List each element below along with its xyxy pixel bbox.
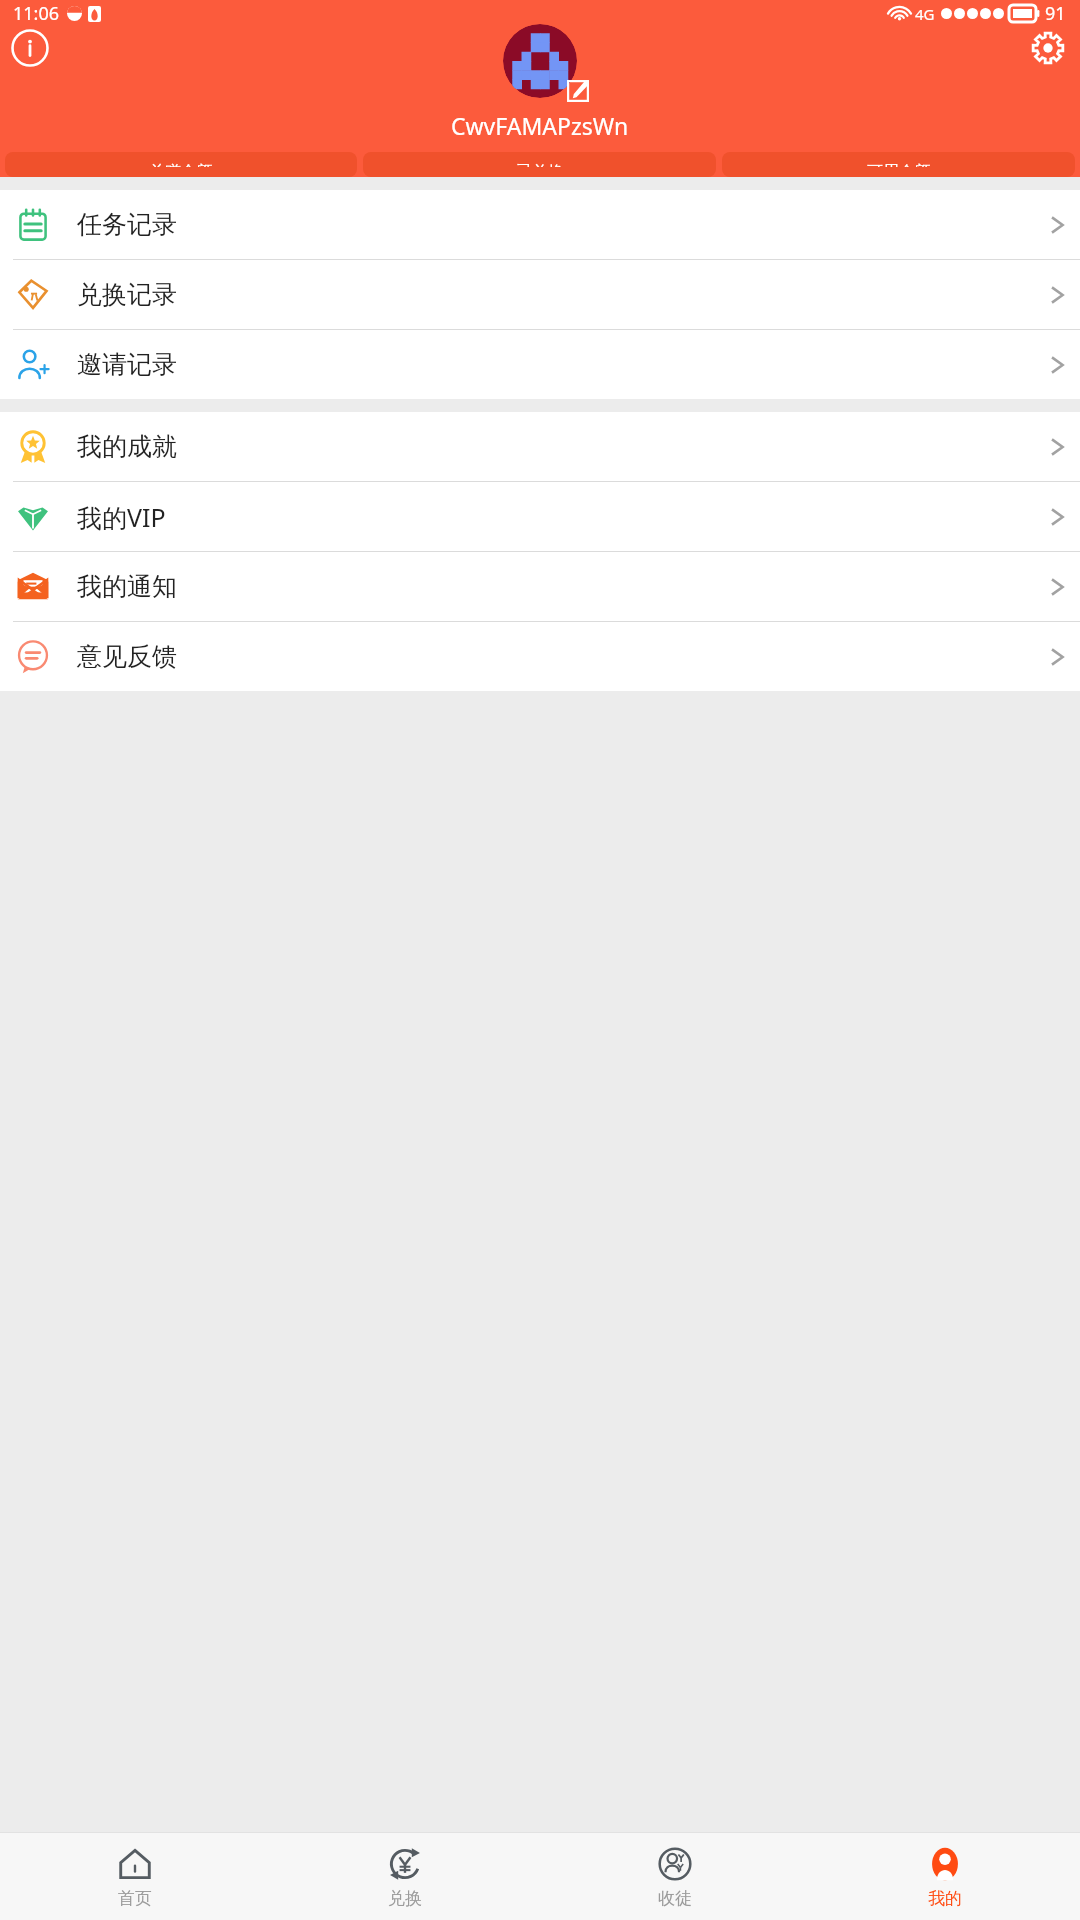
staticText: 兑换 — [388, 1888, 422, 1909]
button[interactable]: 收徒 — [540, 1833, 810, 1920]
staticText: 总赚金额 — [149, 162, 213, 167]
staticText: 首页 — [118, 1888, 152, 1909]
staticText: 已兑换 — [516, 162, 564, 167]
staticText: 意见反馈 — [77, 641, 177, 672]
staticText: 4G — [915, 4, 935, 24]
staticText: 邀请记录 — [77, 349, 177, 380]
staticText: 我的VIP — [77, 500, 166, 534]
button[interactable]: 首页 — [0, 1833, 270, 1920]
button[interactable]: 我的 — [810, 1833, 1080, 1920]
button[interactable]: 邀请记录 — [0, 330, 1080, 399]
button[interactable]: 我的VIP — [0, 482, 1080, 551]
staticText: 任务记录 — [77, 209, 177, 240]
button[interactable]: Avatar — [503, 24, 577, 98]
staticText: 我的通知 — [77, 571, 177, 602]
staticText: 91 — [1045, 1, 1066, 26]
staticText: 11:06 — [13, 1, 60, 26]
button[interactable]: Info — [8, 26, 52, 70]
staticText: 兑换记录 — [77, 279, 177, 310]
button[interactable]: 我的成就 — [0, 412, 1080, 481]
button[interactable]: 总赚金额 — [5, 152, 357, 177]
button[interactable]: 可用余额 — [722, 152, 1075, 177]
staticText: 收徒 — [658, 1888, 692, 1909]
button[interactable]: 任务记录 — [0, 190, 1080, 259]
staticText: CwvFAMAPzsWn — [451, 110, 629, 141]
button[interactable]: 已兑换 — [363, 152, 716, 177]
staticText: 可用余额 — [867, 162, 931, 167]
button[interactable]: 我的通知 — [0, 552, 1080, 621]
button[interactable]: 兑换记录 — [0, 260, 1080, 329]
staticText: 我的 — [928, 1888, 962, 1909]
button[interactable]: Settings — [1026, 26, 1070, 70]
staticText: 我的成就 — [77, 431, 177, 462]
button[interactable]: 兑换 — [270, 1833, 540, 1920]
button[interactable]: 意见反馈 — [0, 622, 1080, 691]
